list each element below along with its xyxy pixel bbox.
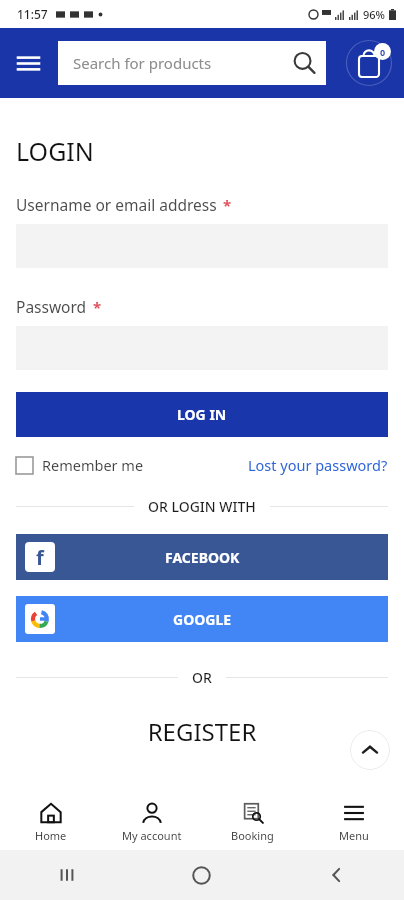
staticText: Menu <box>339 828 369 843</box>
staticText: Search for products <box>73 53 292 73</box>
staticText: Home <box>35 828 67 843</box>
staticText: f <box>36 544 44 571</box>
button[interactable]: Menu <box>303 795 404 850</box>
staticText: FACEBOOK <box>165 548 240 567</box>
button[interactable]: f <box>16 534 388 580</box>
button[interactable]: GOOGLE <box>16 596 388 642</box>
staticText: REGISTER <box>16 715 388 748</box>
staticText: Remember me <box>42 455 144 475</box>
staticText: OR LOGIN WITH <box>148 497 256 516</box>
staticText: * <box>223 195 232 215</box>
button[interactable]: Scroll to top <box>350 730 390 770</box>
staticText: My account <box>122 828 182 843</box>
staticText: * <box>93 297 102 317</box>
staticText: 11:57 <box>17 6 48 22</box>
button[interactable]: Search for products <box>58 41 326 85</box>
staticText: 96% <box>363 7 385 22</box>
staticText: LOG IN <box>177 405 227 424</box>
staticText: LOGIN <box>16 134 94 168</box>
staticText: Booking <box>231 828 274 843</box>
staticText: OR <box>192 668 212 687</box>
staticText: Password <box>16 296 87 317</box>
button[interactable]: Cart <box>344 38 394 88</box>
button[interactable]: Menu <box>8 43 48 83</box>
button[interactable]: Lost your password? <box>248 455 388 475</box>
button[interactable]: Home <box>0 795 101 850</box>
button[interactable]: My account <box>101 795 202 850</box>
button[interactable]: Booking <box>202 795 303 850</box>
button[interactable]: Remember me <box>16 455 144 475</box>
staticText: 0 <box>380 46 386 58</box>
staticText: Username or email address <box>16 194 217 215</box>
staticText: GOOGLE <box>173 610 232 629</box>
staticText: Lost your password? <box>248 455 388 475</box>
button[interactable]: LOG IN <box>16 392 388 437</box>
